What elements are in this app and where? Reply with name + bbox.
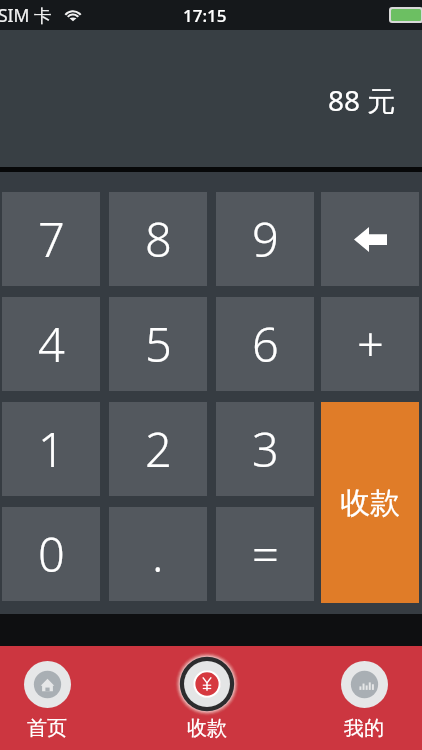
button[interactable]: 1: [2, 402, 100, 496]
staticText: 1: [38, 417, 65, 481]
button[interactable]: 4: [2, 297, 100, 391]
staticText: 2: [145, 417, 172, 481]
staticText: 7: [38, 207, 65, 271]
button[interactable]: 2: [109, 402, 207, 496]
staticText: 4: [38, 312, 65, 376]
staticText: 8: [145, 207, 172, 271]
button[interactable]: 首页: [0, 646, 103, 750]
staticText: 6: [252, 312, 279, 376]
staticText: 收款: [187, 716, 227, 741]
staticText: 0: [38, 522, 65, 586]
staticText: +: [357, 312, 384, 376]
staticText: 收款: [340, 484, 400, 522]
staticText: 3: [252, 417, 279, 481]
button[interactable]: 6: [216, 297, 314, 391]
staticText: =: [252, 522, 279, 586]
staticText: SIM 卡: [0, 3, 52, 27]
button[interactable]: 收款: [321, 402, 419, 603]
staticText: .: [152, 522, 164, 586]
button[interactable]: 7: [2, 192, 100, 286]
staticText: 我的: [344, 716, 384, 741]
button[interactable]: 0: [2, 507, 100, 601]
button[interactable]: .: [109, 507, 207, 601]
button[interactable]: 我的: [308, 646, 420, 750]
button[interactable]: 9: [216, 192, 314, 286]
button[interactable]: Backspace: [321, 192, 419, 286]
staticText: 5: [145, 312, 172, 376]
button[interactable]: 5: [109, 297, 207, 391]
button[interactable]: 3: [216, 402, 314, 496]
button[interactable]: =: [216, 507, 314, 601]
staticText: 17:15: [183, 4, 227, 27]
button[interactable]: 收款: [151, 646, 263, 750]
staticText: 9: [252, 207, 279, 271]
staticText: 首页: [27, 716, 67, 741]
staticText: 88 元: [328, 81, 396, 119]
button[interactable]: +: [321, 297, 419, 391]
button[interactable]: 8: [109, 192, 207, 286]
